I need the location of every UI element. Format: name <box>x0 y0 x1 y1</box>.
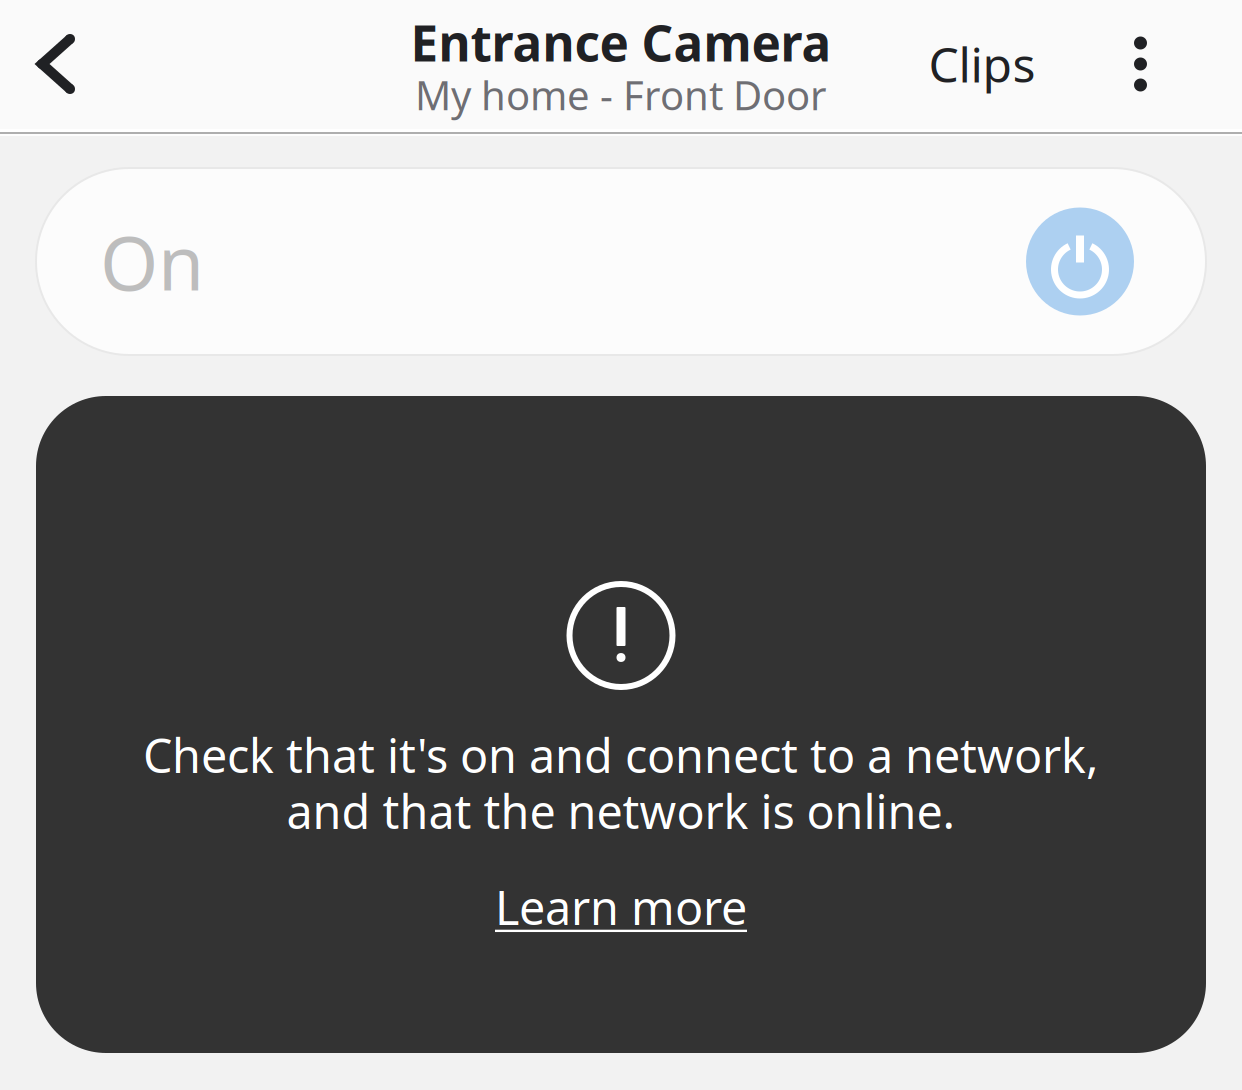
staticText: Clips <box>928 32 1035 96</box>
staticText: Entrance Camera <box>410 10 831 75</box>
staticText: Learn more <box>495 876 747 938</box>
staticText: and that the network is online. <box>286 780 955 842</box>
button[interactable]: Clips <box>877 7 1087 128</box>
button[interactable]: On <box>36 168 1206 355</box>
staticText: My home - Front Door <box>415 68 827 121</box>
button[interactable]: Back <box>0 7 108 128</box>
button[interactable]: More options <box>1087 7 1194 128</box>
button[interactable]: Learn more <box>495 876 747 938</box>
staticText: Check that it's on and connect to a netw… <box>143 724 1099 786</box>
staticText: On <box>100 212 204 311</box>
